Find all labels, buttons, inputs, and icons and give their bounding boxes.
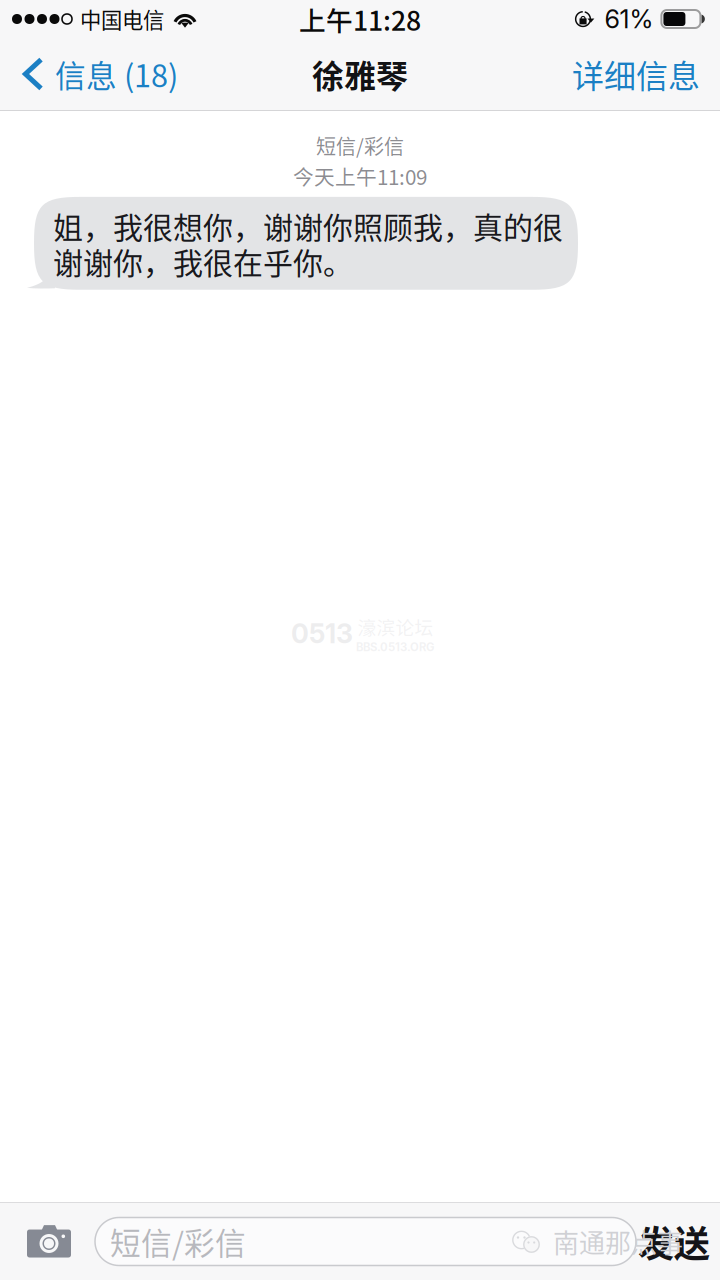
staticText: 今天上午11:09 bbox=[293, 161, 427, 191]
staticText: 61% bbox=[604, 4, 653, 34]
button[interactable]: Camera bbox=[0, 1206, 95, 1276]
staticText: 濠滨论坛 bbox=[357, 613, 433, 640]
staticText: 南通那点事 bbox=[553, 1223, 683, 1260]
staticText: 发送 bbox=[638, 1215, 710, 1267]
staticText: 信息 (18) bbox=[55, 52, 178, 96]
staticText: 徐雅琴 bbox=[312, 51, 408, 97]
staticText: 中国电信 bbox=[80, 4, 164, 34]
staticText: 上午11:28 bbox=[299, 0, 421, 38]
staticText: 短信/彩信 bbox=[316, 131, 404, 160]
staticText: 详细信息 bbox=[572, 51, 700, 97]
staticText: 姐，我很想你，谢谢你照顾我，真的很 谢谢你，我很在乎你。 bbox=[53, 204, 563, 283]
button[interactable]: 发送 bbox=[638, 1203, 720, 1279]
staticText: BBS.0513.ORG bbox=[356, 640, 435, 654]
staticText: 0513 bbox=[291, 617, 353, 650]
button[interactable]: 详细信息 bbox=[572, 42, 720, 106]
button[interactable]: 信息 (18) bbox=[0, 43, 178, 105]
staticText: 短信/彩信 bbox=[110, 1219, 246, 1264]
